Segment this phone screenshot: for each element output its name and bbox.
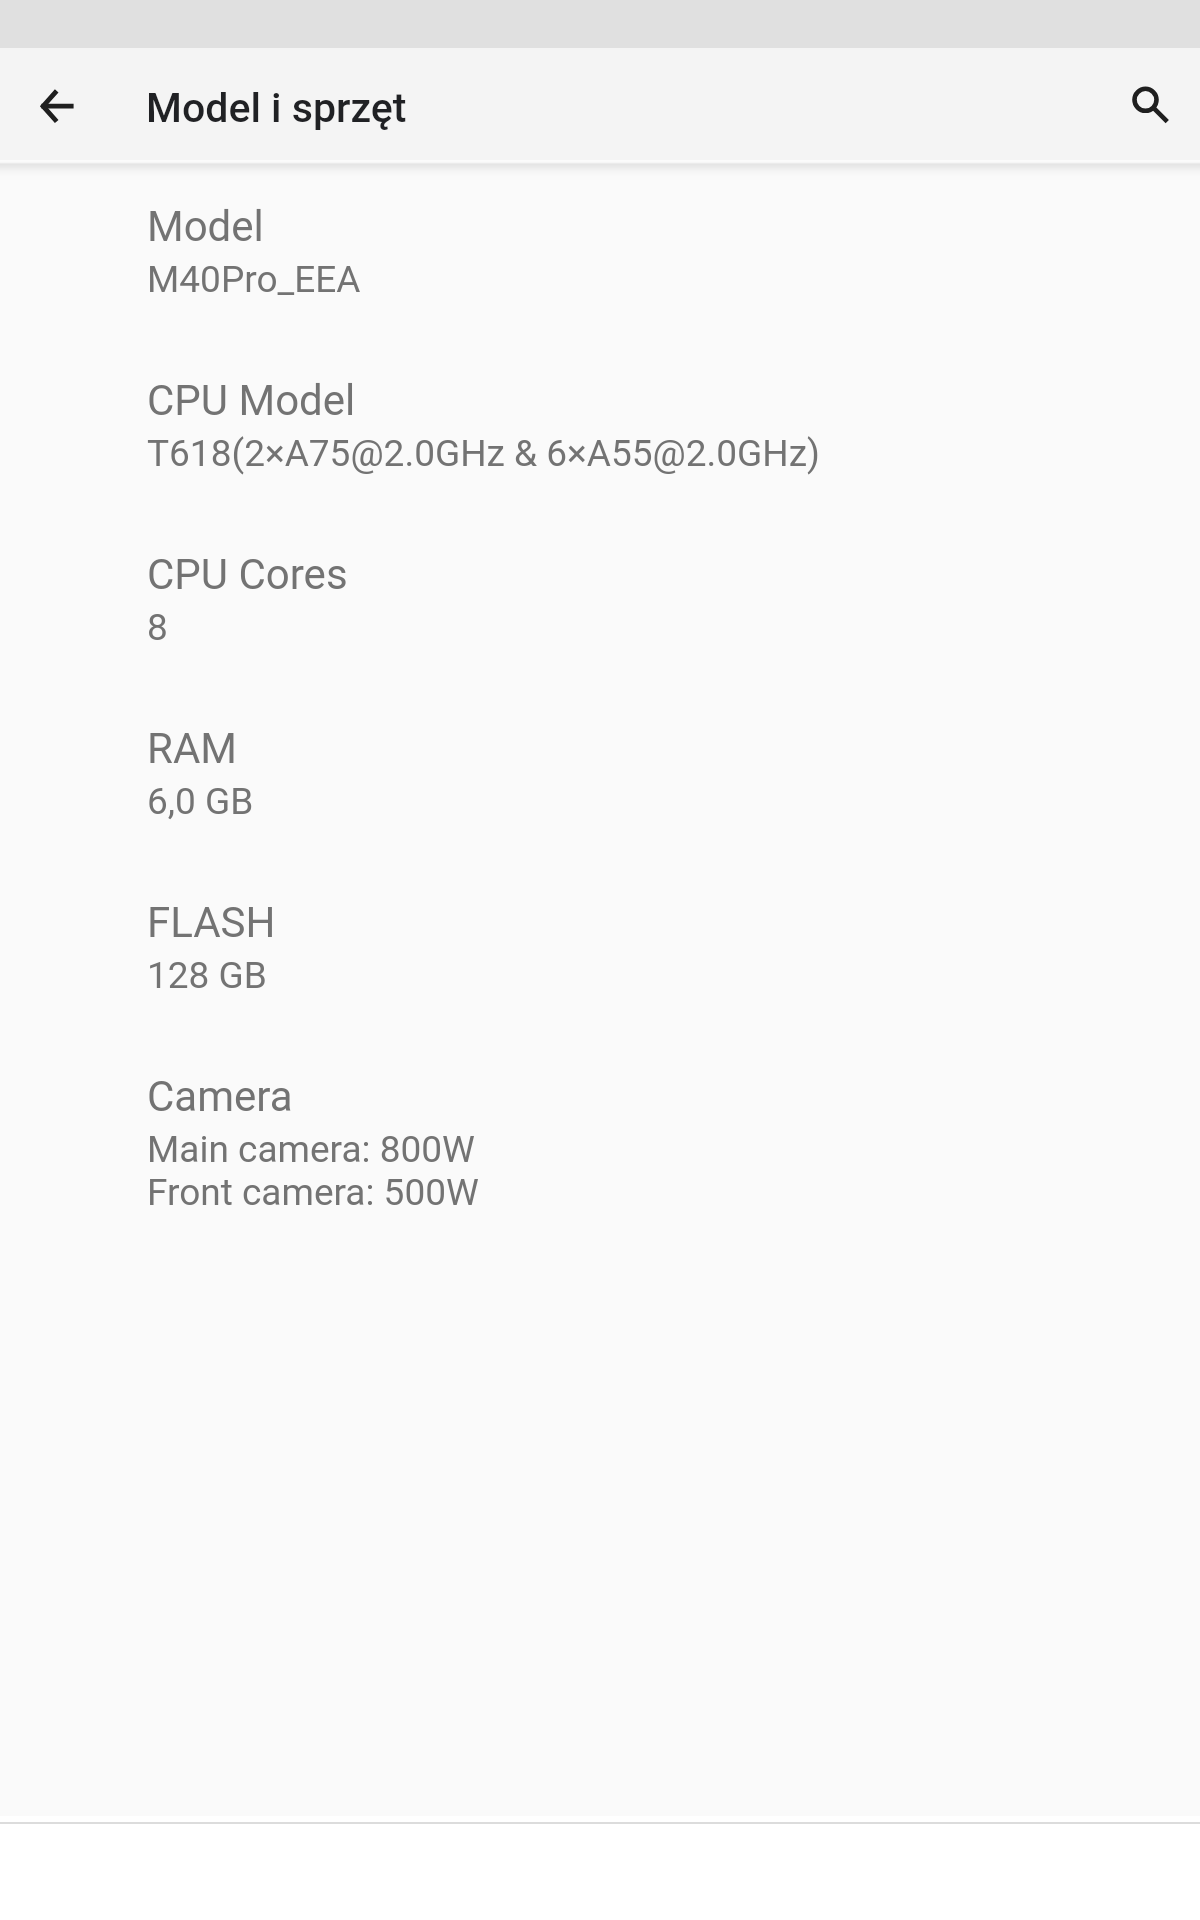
staticText: Model i sprzęt bbox=[146, 84, 407, 132]
staticText: Model bbox=[147, 202, 264, 251]
staticText: T618(2×A75@2.0GHz & 6×A55@2.0GHz) bbox=[147, 432, 820, 475]
staticText: 6,0 GB bbox=[147, 780, 254, 823]
staticText: Camera bbox=[147, 1072, 293, 1121]
staticText: FLASH bbox=[147, 898, 276, 947]
staticText: Main camera: 800W Front camera: 500W bbox=[147, 1128, 479, 1214]
button[interactable]: Back bbox=[21, 68, 93, 140]
staticText: CPU Cores bbox=[147, 550, 348, 599]
staticText: 128 GB bbox=[147, 954, 267, 997]
staticText: RAM bbox=[147, 724, 237, 773]
button[interactable]: Search bbox=[1110, 68, 1182, 140]
staticText: M40Pro_EEA bbox=[147, 258, 361, 301]
staticText: CPU Model bbox=[147, 376, 356, 425]
staticText: 8 bbox=[147, 606, 168, 649]
